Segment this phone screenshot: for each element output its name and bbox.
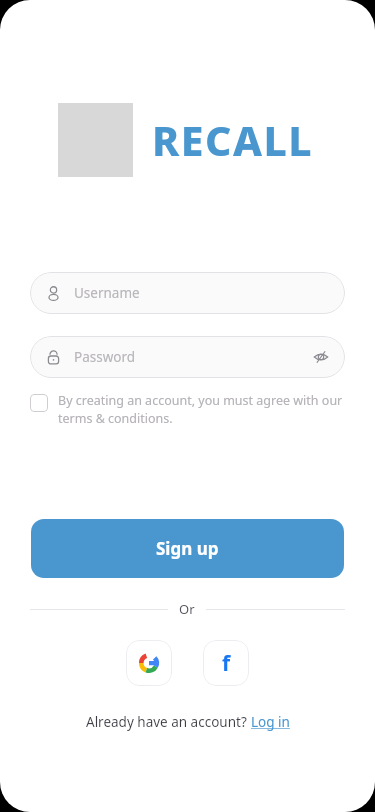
button[interactable]: Username xyxy=(30,272,345,314)
staticText: Or xyxy=(179,600,195,618)
staticText: Username xyxy=(74,284,329,302)
button[interactable]: By creating an account, you must agree w… xyxy=(30,392,345,427)
staticText: Sign up xyxy=(156,537,219,560)
button[interactable]: Log in xyxy=(251,713,290,731)
other: Show password xyxy=(313,349,329,365)
staticText: f xyxy=(222,649,231,678)
staticText: Log in xyxy=(251,713,290,731)
button[interactable]: Sign in with Facebook xyxy=(203,640,249,686)
staticText: RECALL xyxy=(152,112,314,168)
staticText: Password xyxy=(74,348,313,366)
staticText: Already have an account? xyxy=(86,713,251,731)
button[interactable]: Sign in with Google xyxy=(126,640,172,686)
button[interactable]: Sign up xyxy=(31,519,344,578)
button[interactable]: Password xyxy=(30,336,345,378)
staticText: By creating an account, you must agree w… xyxy=(58,392,345,427)
